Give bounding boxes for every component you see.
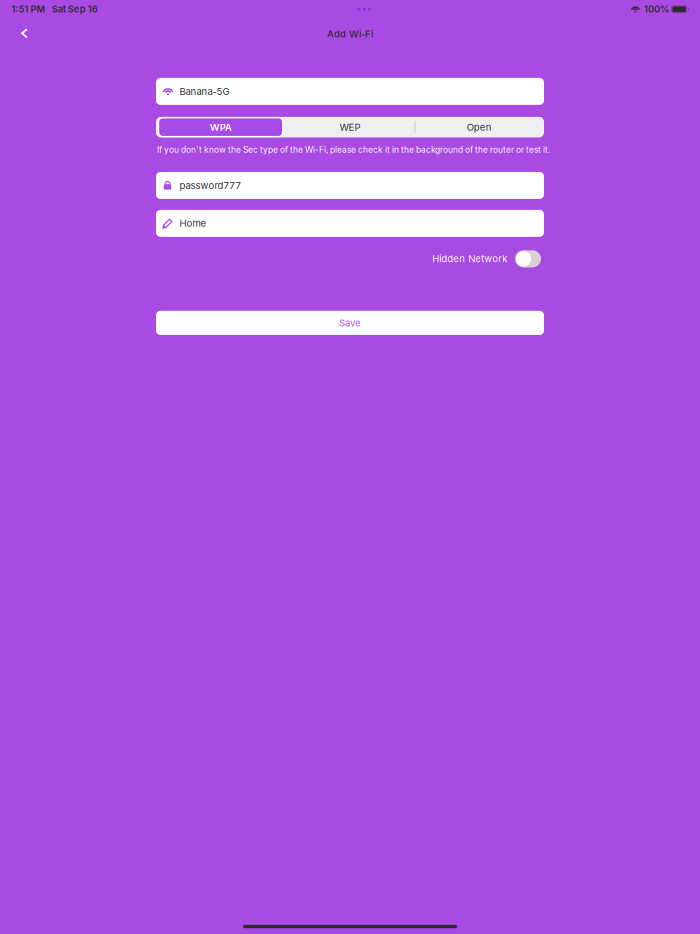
button[interactable]: Back — [8, 19, 40, 47]
staticText: Banana-5G — [179, 86, 229, 97]
staticText: Save — [339, 317, 361, 329]
staticText: Hidden Network — [432, 253, 507, 265]
button[interactable]: password777 — [156, 172, 544, 199]
staticText: WEP — [339, 121, 360, 133]
button[interactable]: Save — [156, 311, 544, 335]
staticText: Add Wi-Fi — [327, 28, 373, 40]
button[interactable]: WPA — [156, 117, 285, 137]
staticText: password777 — [179, 180, 240, 191]
staticText: Sat Sep 16 — [52, 4, 98, 15]
staticText: Home — [179, 217, 206, 229]
button[interactable]: WEP — [285, 117, 415, 137]
staticText: Open — [467, 121, 492, 133]
button[interactable]: Hidden Network toggle — [515, 250, 541, 267]
button[interactable]: Banana-5G — [156, 78, 544, 105]
button[interactable]: Home — [156, 210, 544, 237]
staticText: WPA — [210, 121, 232, 133]
staticText: If you don't know the Sec type of the Wi… — [157, 144, 550, 155]
staticText: 100% — [644, 4, 669, 15]
button[interactable]: Open — [415, 117, 544, 137]
staticText: 1:51 PM — [11, 4, 45, 15]
